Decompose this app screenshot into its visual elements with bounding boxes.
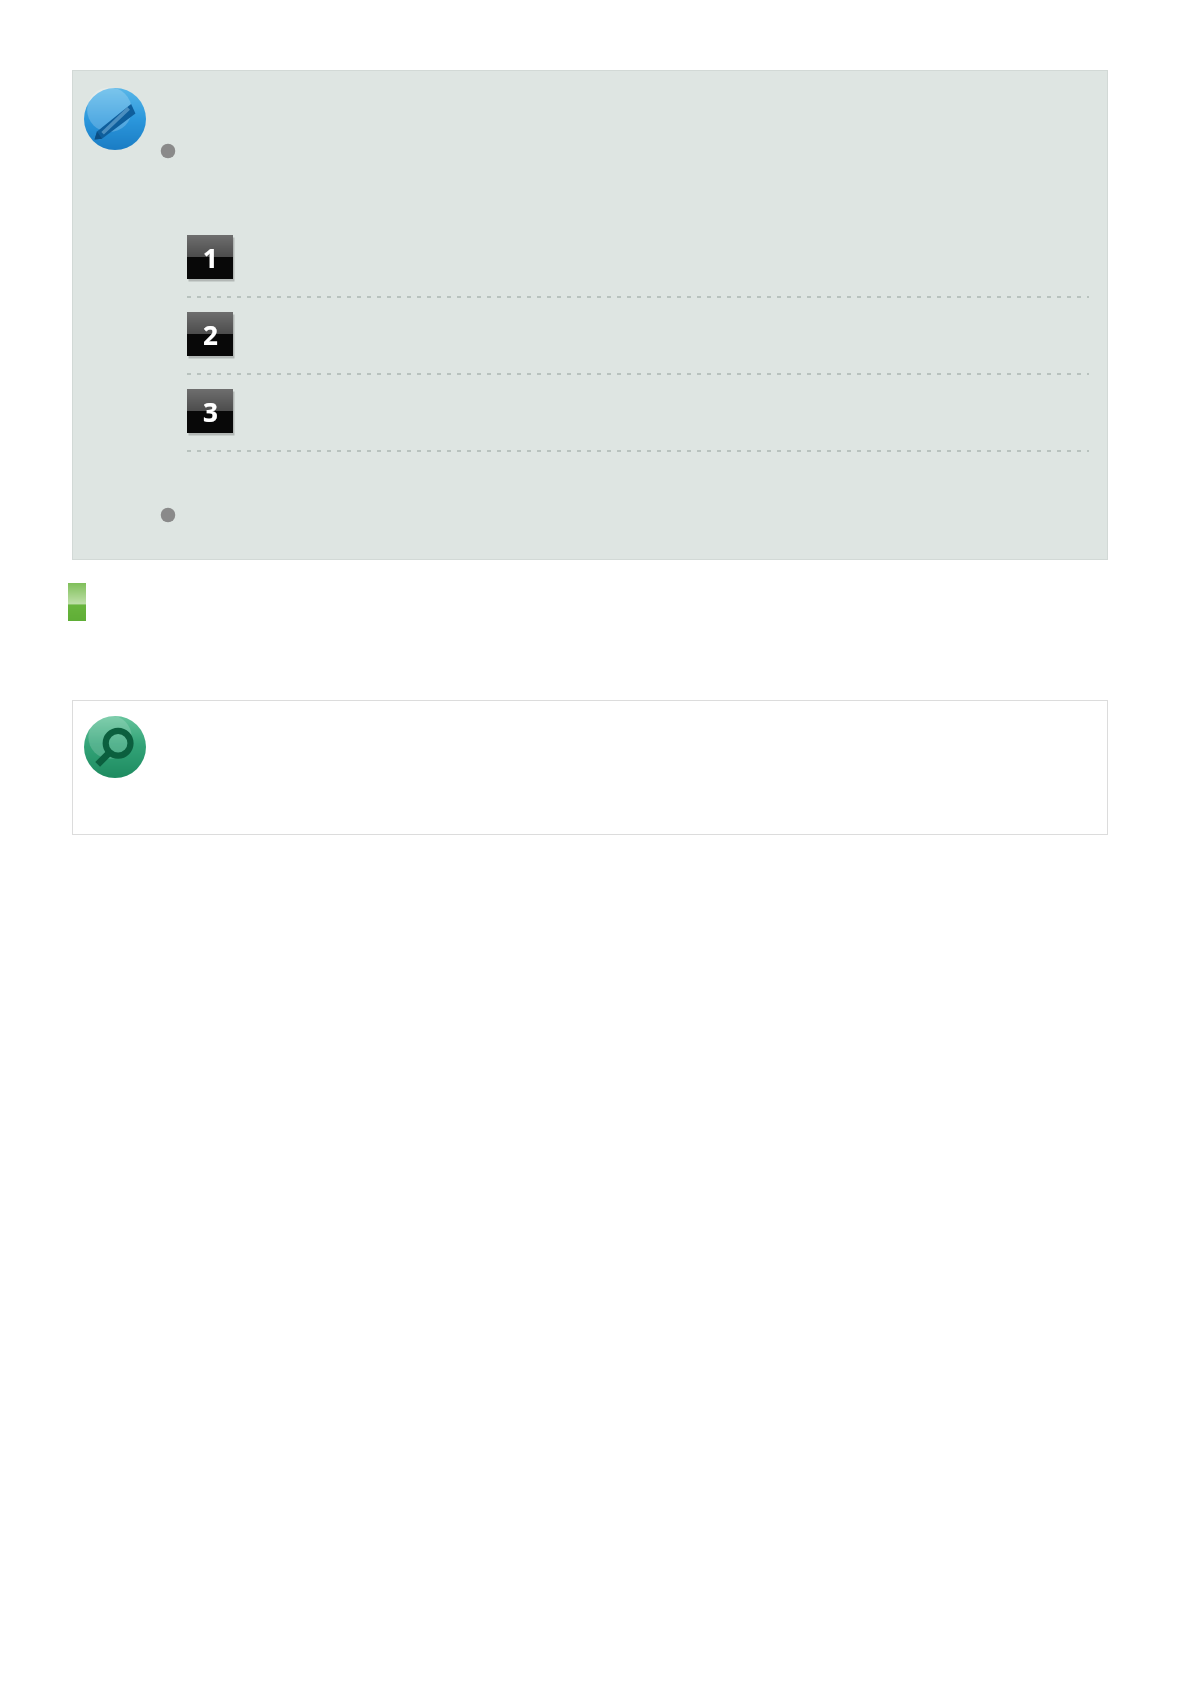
button[interactable]: Search [84, 716, 146, 778]
button[interactable]: 3 [187, 389, 233, 433]
button[interactable]: Search [72, 700, 1108, 835]
button[interactable]: 2 [187, 312, 233, 356]
button[interactable]: Edit note [84, 88, 146, 150]
staticText: 2 [203, 317, 218, 352]
staticText: 3 [203, 394, 218, 429]
button[interactable]: 1 [187, 235, 233, 279]
staticText: 1 [203, 240, 218, 275]
button[interactable]: Edit note [72, 70, 1108, 560]
button[interactable] [68, 583, 86, 621]
